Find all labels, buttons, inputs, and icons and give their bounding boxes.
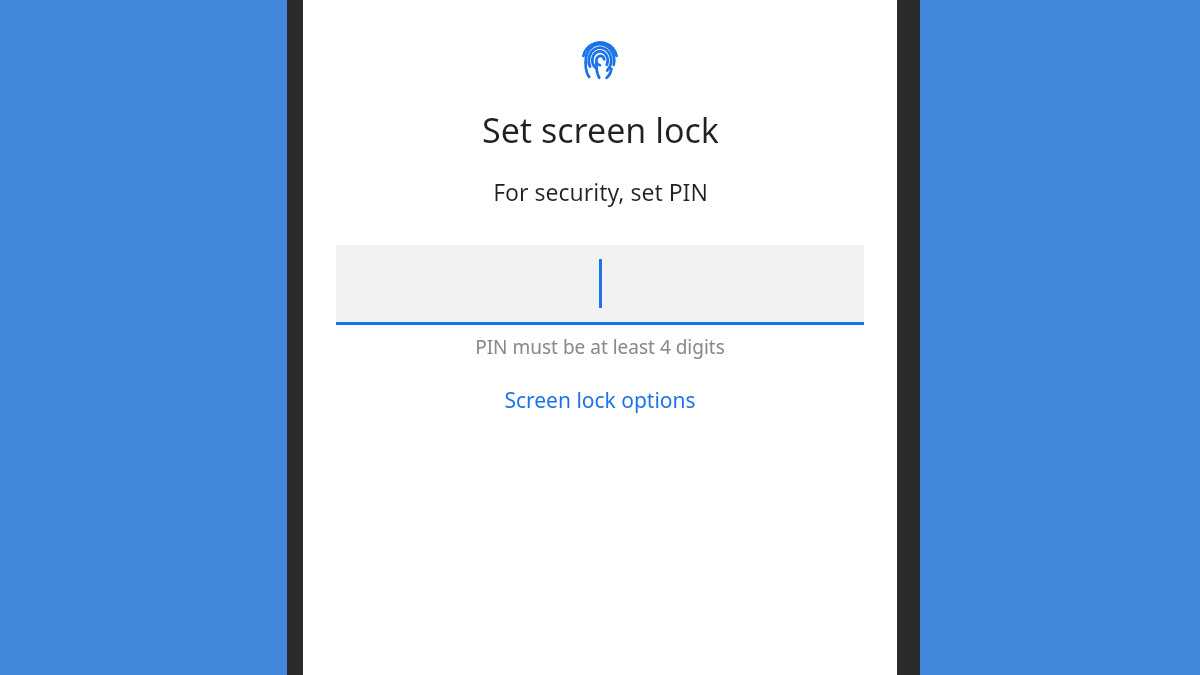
staticText: For security, set PIN	[493, 176, 708, 207]
staticText: Screen lock options	[504, 386, 696, 415]
other: Fingerprint	[581, 38, 619, 79]
button[interactable]	[336, 245, 864, 325]
button[interactable]: Screen lock options	[492, 382, 708, 419]
staticText: Set screen lock	[482, 107, 719, 153]
staticText: PIN must be at least 4 digits	[475, 334, 725, 360]
